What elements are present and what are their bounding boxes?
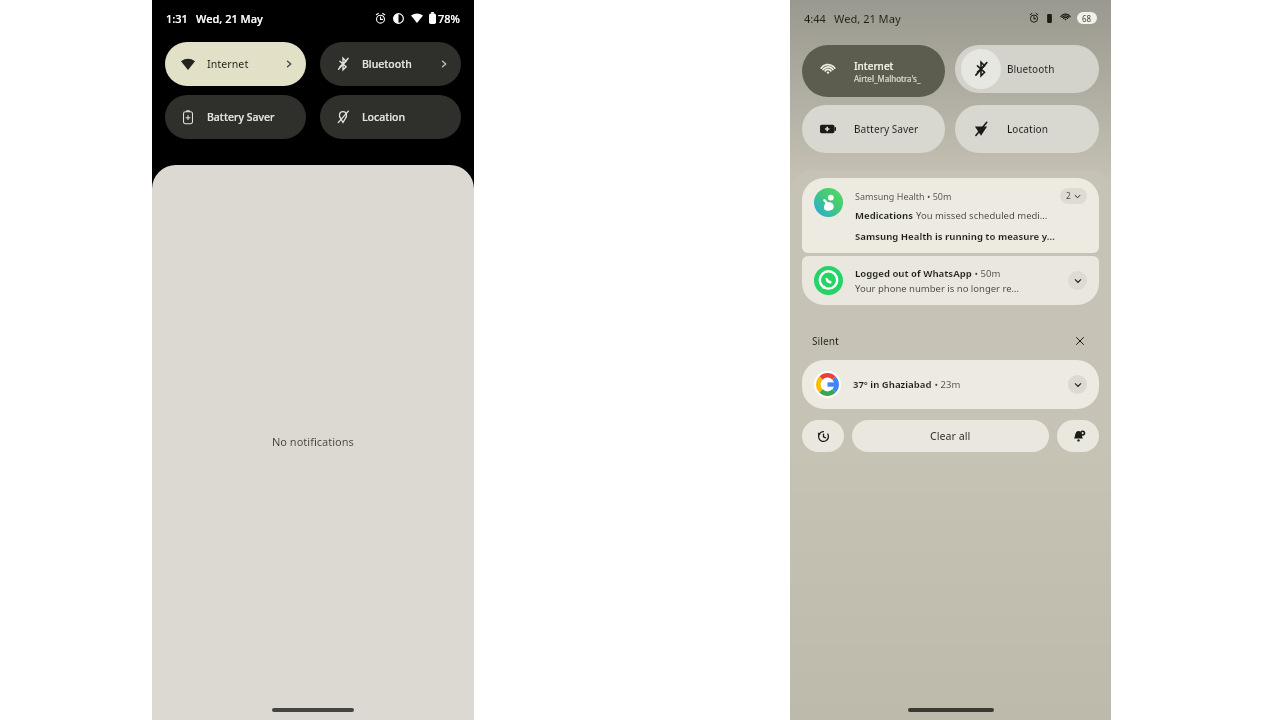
staticText: Location (362, 110, 406, 124)
staticText: • 50m (972, 267, 1001, 280)
staticText: Medications (855, 209, 916, 222)
button[interactable]: Samsung Health • 50m (802, 178, 1099, 253)
staticText: 68 (1082, 13, 1092, 24)
button[interactable]: 37° in Ghaziabad (802, 360, 1099, 409)
button[interactable]: Bluetooth (955, 45, 1099, 93)
staticText: Internet (207, 57, 249, 71)
staticText: No notifications (272, 434, 354, 449)
staticText: Bluetooth (1007, 62, 1055, 76)
staticText: 2 (1066, 190, 1071, 202)
button[interactable]: Expand notification (1068, 271, 1087, 290)
staticText: • 23m (932, 378, 961, 391)
button[interactable]: Expand group (1060, 188, 1087, 204)
button[interactable]: Bluetooth (320, 42, 461, 86)
staticText: Wed, 21 May (834, 11, 901, 26)
staticText: 4:44 (804, 11, 826, 26)
button[interactable]: Logged out of WhatsApp (802, 256, 1099, 305)
staticText: Wed, 21 May (196, 11, 263, 26)
staticText: Samsung Health is running to measure y… (855, 230, 1055, 243)
staticText: 1:31 (166, 11, 188, 26)
button[interactable]: Location (320, 95, 461, 139)
staticText: 37° in Ghaziabad (853, 378, 932, 391)
button[interactable]: Battery Saver (165, 95, 306, 139)
staticText: 78% (438, 11, 460, 26)
staticText: Silent (812, 334, 839, 348)
button[interactable]: Notification history (802, 420, 844, 452)
staticText: Clear all (930, 429, 971, 443)
button[interactable]: Internet (802, 45, 945, 97)
staticText: Bluetooth (362, 57, 412, 71)
staticText: Location (1007, 122, 1048, 136)
staticText: Battery Saver (854, 122, 919, 136)
button[interactable]: Expand notification (1068, 375, 1087, 394)
button[interactable]: Clear all (852, 420, 1049, 452)
button[interactable]: Battery Saver (802, 105, 945, 153)
button[interactable]: Notification settings (1057, 420, 1099, 452)
staticText: Internet (854, 59, 894, 73)
staticText: Airtel_Malhotra's_ (854, 73, 921, 84)
staticText: Logged out of WhatsApp (855, 267, 972, 280)
button[interactable]: Clear silent (1071, 332, 1089, 350)
staticText: You missed scheduled medi… (916, 209, 1048, 222)
staticText: Your phone number is no longer re… (855, 282, 1020, 295)
staticText: Samsung Health • 50m (855, 190, 952, 202)
button[interactable]: Internet (165, 42, 306, 86)
button[interactable]: Location (955, 105, 1099, 153)
staticText: Battery Saver (207, 110, 275, 124)
